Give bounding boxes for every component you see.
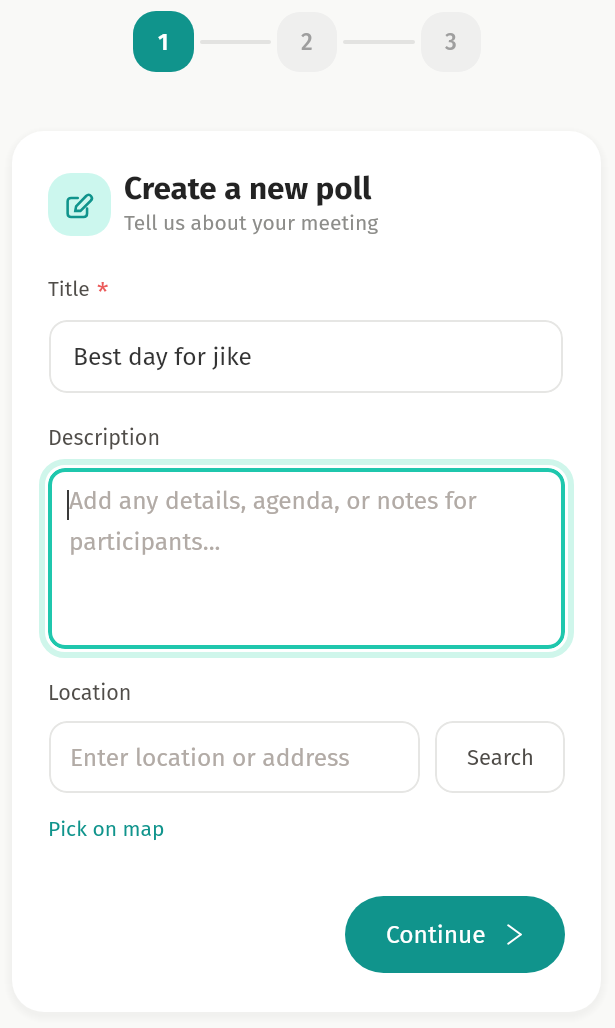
staticText: Search [467, 744, 534, 770]
staticText: 2 [301, 28, 313, 56]
staticText: * [97, 277, 109, 308]
staticText: 3 [445, 28, 457, 56]
staticText: 1 [158, 28, 169, 56]
staticText: Pick on map [48, 816, 165, 841]
button[interactable]: Best day for jike [49, 320, 563, 393]
other: Edit [66, 191, 93, 218]
staticText: Tell us about your meeting [124, 210, 379, 235]
other: Next [504, 924, 525, 945]
button[interactable]: Add any details, agenda, or notes for pa… [48, 468, 565, 649]
button[interactable]: 2 [277, 12, 337, 72]
staticText: Description [48, 425, 160, 451]
button[interactable]: 1 [133, 11, 194, 72]
button[interactable]: Continue [345, 896, 565, 973]
staticText: Title [48, 276, 90, 301]
button[interactable]: Pick on map [48, 816, 165, 841]
staticText: Continue [386, 920, 486, 949]
staticText: Add any details, agenda, or notes for pa… [69, 486, 519, 556]
staticText: Location [48, 680, 132, 706]
staticText: Enter location or address [70, 743, 350, 772]
button[interactable]: Search [435, 721, 565, 793]
staticText: Create a new poll [124, 170, 372, 208]
button[interactable]: Enter location or address [49, 721, 420, 793]
button[interactable]: 3 [421, 12, 481, 72]
staticText: Best day for jike [73, 342, 252, 371]
